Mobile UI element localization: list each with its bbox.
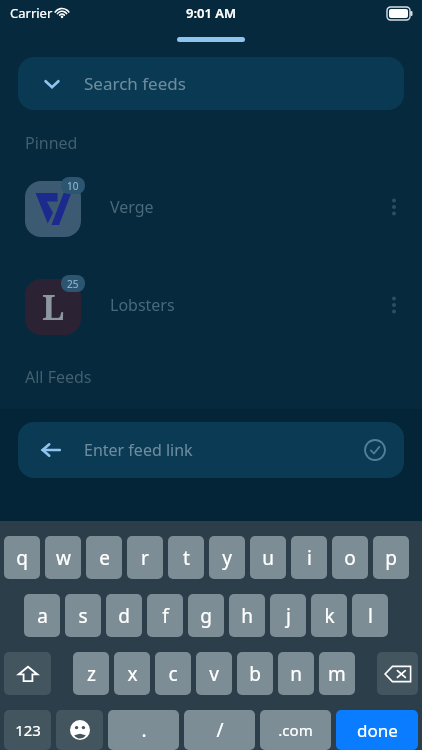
button[interactable] (56, 710, 103, 750)
button[interactable]: l (352, 594, 388, 637)
button[interactable]: c (155, 652, 191, 695)
button[interactable]: a (24, 594, 60, 637)
button[interactable]: v (196, 652, 232, 695)
button[interactable]: 123 (4, 710, 51, 750)
staticText: i (307, 545, 312, 571)
staticText: .com (278, 720, 313, 740)
staticText: L (42, 284, 65, 330)
staticText: 9:01 AM (186, 4, 237, 22)
button[interactable]: p (373, 536, 409, 579)
staticText: t (183, 545, 190, 571)
staticText: y (222, 545, 232, 571)
button[interactable]: Search feeds (18, 57, 404, 110)
button[interactable]: q (4, 536, 40, 579)
button[interactable]: t (168, 536, 204, 579)
staticText: z (87, 661, 96, 687)
staticText: x (127, 661, 138, 687)
other: Shift (4, 652, 51, 695)
staticText: 10 (67, 179, 79, 193)
staticText: p (385, 545, 397, 571)
button[interactable]: x (114, 652, 150, 695)
staticText: f (162, 603, 169, 629)
staticText: Carrier (10, 4, 53, 22)
button[interactable]: i (291, 536, 327, 579)
button[interactable]: j (270, 594, 306, 637)
button[interactable]: h (229, 594, 265, 637)
button[interactable]: s (65, 594, 101, 637)
staticText: Pinned (25, 132, 78, 154)
staticText: e (99, 545, 110, 571)
staticText: u (262, 545, 274, 571)
button[interactable]: . (108, 710, 179, 750)
staticText: a (37, 603, 48, 629)
staticText: 25 (67, 277, 79, 291)
staticText: Lobsters (110, 294, 175, 316)
staticText: 123 (15, 720, 41, 740)
button[interactable]: n (278, 652, 314, 695)
staticText: done (357, 719, 398, 742)
button[interactable]: done (336, 710, 418, 750)
button[interactable]: b (237, 652, 273, 695)
staticText: Verge (110, 196, 154, 218)
other: Back (40, 439, 62, 461)
button[interactable]: f (147, 594, 183, 637)
other: Emoji (56, 710, 103, 750)
button[interactable]: e (86, 536, 122, 579)
button[interactable]: u (250, 536, 286, 579)
button[interactable] (4, 652, 51, 695)
other: Confirm (364, 439, 386, 461)
staticText: Enter feed link (84, 439, 193, 461)
button[interactable]: d (106, 594, 142, 637)
other: Backspace (377, 652, 418, 695)
button[interactable]: Back (18, 422, 404, 478)
staticText: h (241, 603, 253, 629)
button[interactable]: w (45, 536, 81, 579)
staticText: / (216, 717, 224, 743)
staticText: s (78, 603, 88, 629)
staticText: r (141, 545, 149, 571)
staticText: b (249, 661, 261, 687)
button[interactable]: More options for Verge (374, 187, 414, 227)
staticText: . (141, 717, 147, 743)
button[interactable]: y (209, 536, 245, 579)
button[interactable]: z (73, 652, 109, 695)
staticText: All Feeds (25, 366, 92, 388)
staticText: j (286, 603, 291, 629)
button[interactable]: / (184, 710, 255, 750)
staticText: n (290, 661, 302, 687)
staticText: v (209, 661, 219, 687)
button[interactable]: 10 (0, 166, 422, 248)
button[interactable]: g (188, 594, 224, 637)
button[interactable]: m (319, 652, 355, 695)
button[interactable]: r (127, 536, 163, 579)
staticText: q (16, 545, 28, 571)
staticText: g (200, 603, 212, 629)
staticText: o (344, 545, 356, 571)
staticText: l (368, 603, 373, 629)
button[interactable]: More options for Lobsters (374, 285, 414, 325)
staticText: k (324, 603, 335, 629)
button[interactable]: L (0, 264, 422, 346)
staticText: Search feeds (84, 72, 186, 95)
button[interactable]: k (311, 594, 347, 637)
button[interactable]: o (332, 536, 368, 579)
staticText: d (118, 603, 130, 629)
staticText: w (56, 545, 71, 571)
button[interactable]: .com (260, 710, 331, 750)
staticText: m (328, 661, 346, 687)
button[interactable] (377, 652, 418, 695)
staticText: c (168, 661, 178, 687)
